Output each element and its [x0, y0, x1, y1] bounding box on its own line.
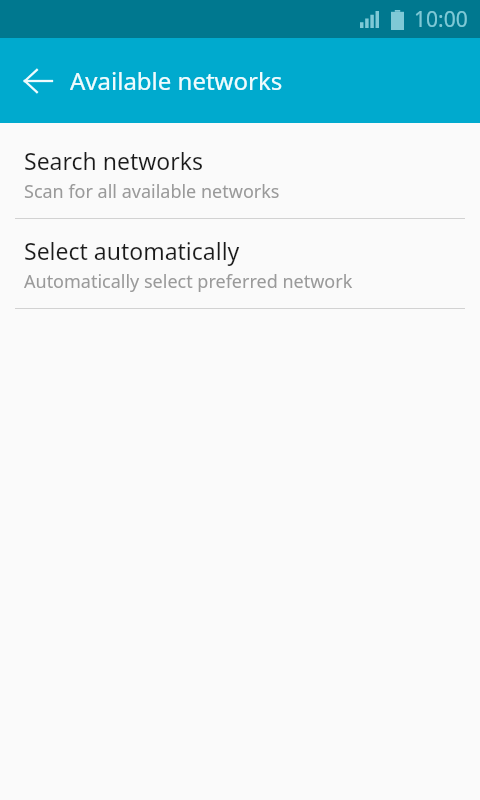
staticText: Scan for all available networks	[24, 179, 280, 204]
staticText: Search networks	[24, 145, 204, 176]
button[interactable]: Select automatically	[0, 219, 480, 308]
button[interactable]: Navigate up	[9, 52, 67, 110]
staticText: Automatically select preferred network	[24, 269, 353, 294]
staticText: Select automatically	[24, 235, 240, 266]
button[interactable]: Search networks	[0, 123, 480, 218]
staticText: 10:00	[414, 5, 468, 34]
staticText: Available networks	[70, 64, 283, 97]
